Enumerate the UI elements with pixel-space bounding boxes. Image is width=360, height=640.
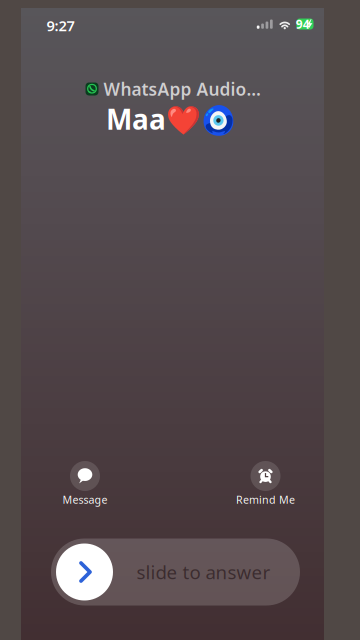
staticText: Remind Me: [236, 492, 295, 507]
staticText: WhatsApp Audio…: [103, 77, 260, 100]
staticText: Maa❤️🧿: [106, 100, 236, 138]
staticText: slide to answer: [136, 560, 270, 584]
button[interactable]: slide to answer: [51, 538, 300, 605]
staticText: Message: [62, 492, 107, 507]
staticText: 94: [296, 16, 310, 32]
staticText: 9:27: [46, 16, 74, 35]
button[interactable]: Message: [39, 460, 131, 522]
button[interactable]: Remind Me: [219, 460, 311, 522]
